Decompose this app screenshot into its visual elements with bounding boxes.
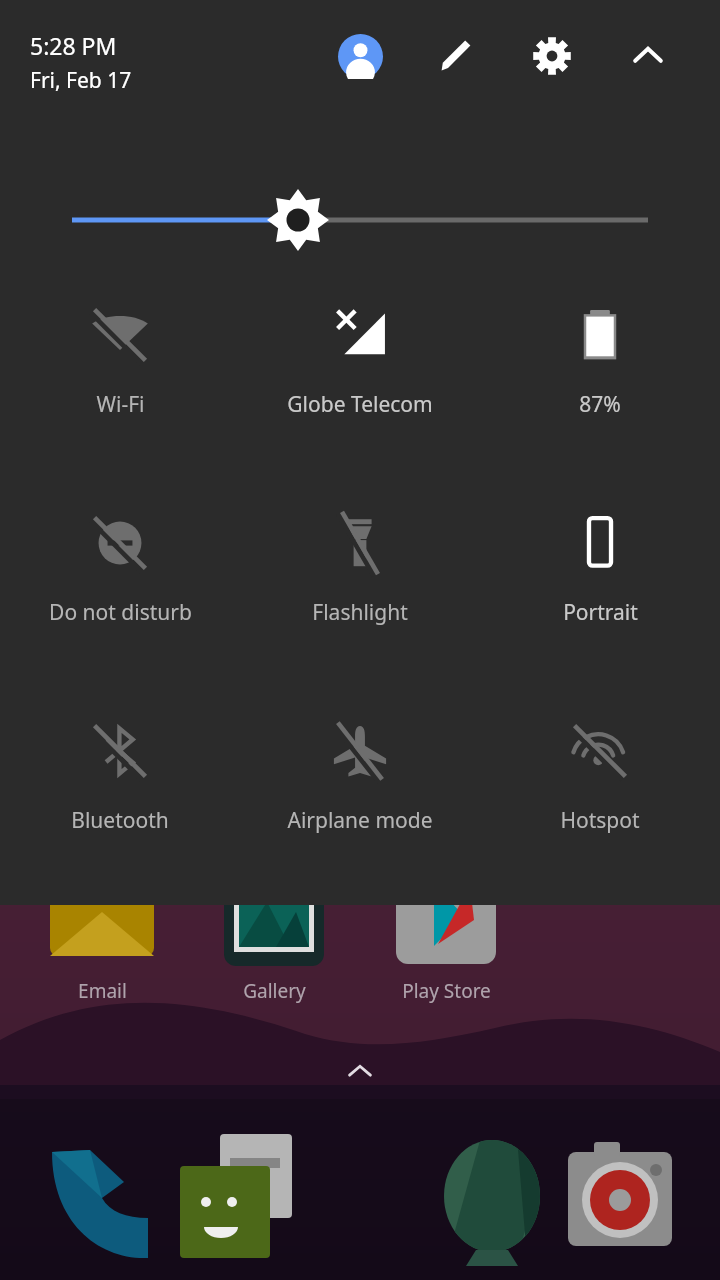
staticText: Flashlight [312,598,408,627]
button[interactable]: Edit [424,24,488,88]
button[interactable]: User [328,24,392,88]
staticText: Fri, Feb 17 [30,66,132,95]
button[interactable]: Phone [50,1150,146,1246]
button[interactable]: Portrait [480,502,720,710]
button[interactable]: Wi-Fi [0,294,240,502]
staticText: Play Store [402,978,491,1004]
button[interactable]: Messaging [180,1150,276,1246]
staticText: Do not disturb [49,598,192,627]
staticText: Gallery [243,978,306,1004]
button[interactable]: Flashlight [240,502,480,710]
button[interactable]: Airplane mode [240,710,480,918]
staticText: 5:28 PM [30,30,117,61]
button[interactable]: Open app drawer [336,1048,384,1096]
button[interactable]: Do not disturb [0,502,240,710]
button[interactable]: 5:28 PM [0,0,720,905]
staticText: 87% [579,390,621,419]
button[interactable]: Globe Telecom [240,294,480,502]
button[interactable]: Collapse [616,24,680,88]
staticText: Globe Telecom [287,390,433,419]
button[interactable] [0,176,720,266]
button[interactable]: Camera [572,1150,668,1246]
staticText: Portrait [563,598,638,627]
button[interactable]: Bluetooth [0,710,240,918]
button[interactable]: Browser [444,1150,540,1246]
button[interactable]: 87% [480,294,720,502]
button[interactable]: Settings [520,24,584,88]
staticText: Hotspot [560,806,640,835]
staticText: Bluetooth [71,806,169,835]
staticText: Wi-Fi [96,390,145,419]
staticText: Airplane mode [287,806,433,835]
button[interactable]: Hotspot [480,710,720,918]
staticText: Email [78,978,127,1004]
